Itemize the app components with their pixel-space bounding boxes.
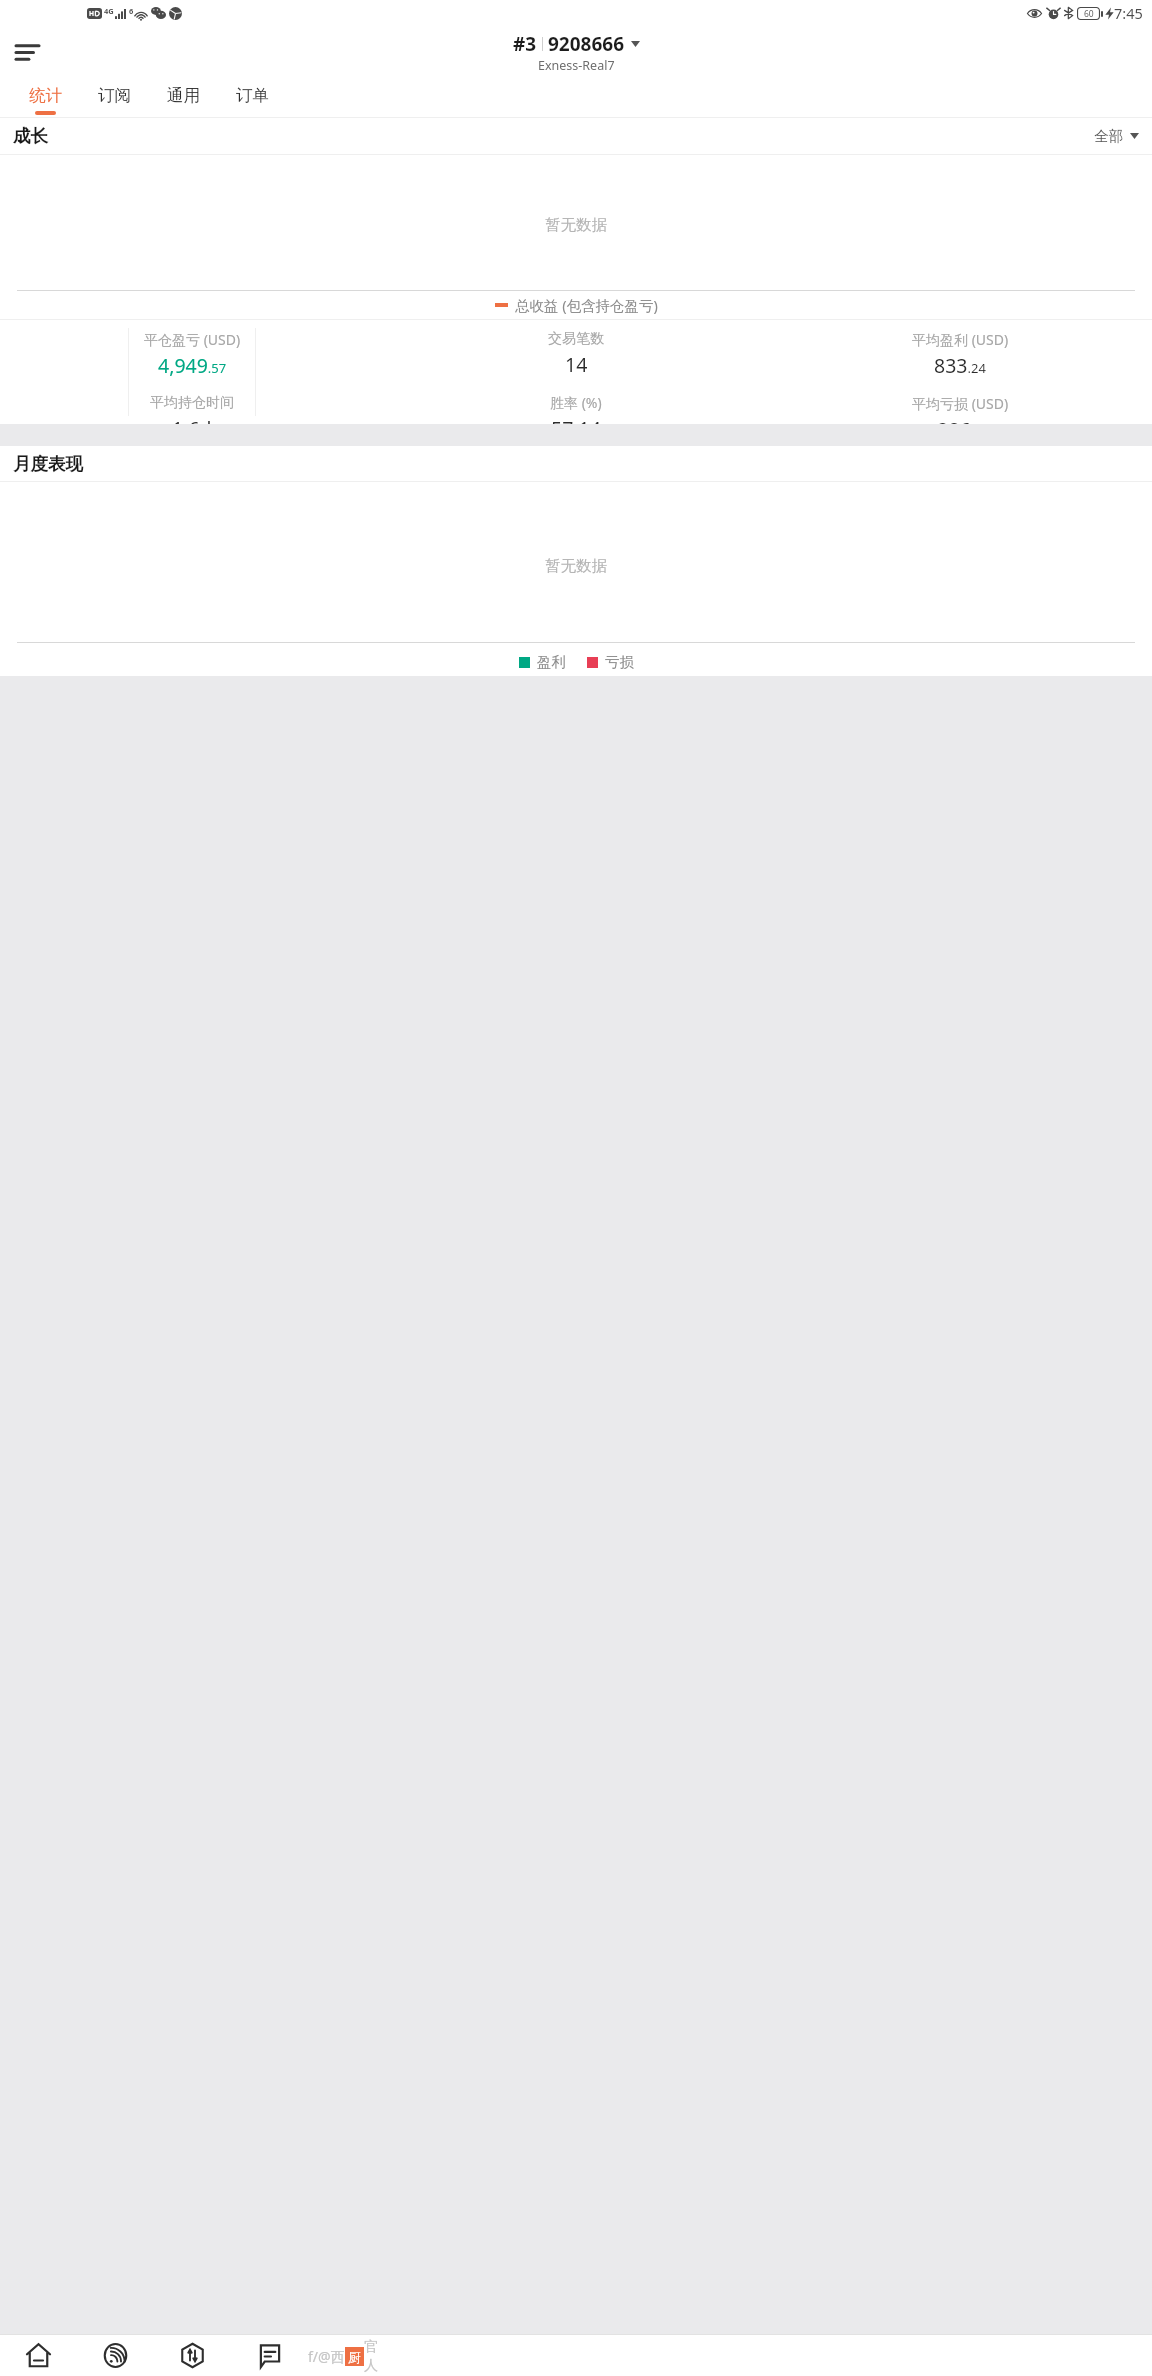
button[interactable]: #3 — [513, 31, 640, 74]
staticText: 官人 — [364, 2338, 385, 2374]
staticText: 订阅 — [98, 85, 131, 106]
staticText: Exness-Real7 — [538, 57, 615, 74]
staticText: 14 — [565, 351, 588, 378]
button[interactable]: 统计 — [11, 78, 80, 117]
staticText: f/@西 — [308, 2347, 345, 2366]
staticText: 暂无数据 — [545, 215, 607, 235]
staticText: 厨 — [348, 2349, 361, 2365]
button[interactable]: Signals — [77, 2335, 154, 2376]
staticText: 1.6d — [172, 415, 212, 424]
staticText: 交易笔数 — [548, 330, 604, 348]
staticText: 亏损 — [605, 653, 634, 671]
staticText: 57.14 — [551, 415, 601, 424]
staticText: 暂无数据 — [545, 556, 607, 576]
staticText: 833.24 — [934, 352, 986, 379]
button[interactable]: 全部 — [1094, 127, 1139, 145]
staticText: 通用 — [167, 85, 200, 106]
staticText: 成长 — [13, 125, 48, 147]
staticText: 平均持仓时间 — [150, 394, 234, 412]
button[interactable]: Trade — [154, 2335, 231, 2376]
staticText: 平均盈利 (USD) — [912, 330, 1009, 349]
staticText: 胜率 (%) — [550, 393, 602, 412]
button[interactable]: 订阅 — [80, 78, 149, 117]
staticText: 平仓盈亏 (USD) — [144, 330, 241, 349]
staticText: 总收益 (包含持仓盈亏) — [515, 295, 658, 315]
staticText: 全部 — [1094, 127, 1123, 145]
button[interactable]: Menu — [2, 27, 52, 77]
button[interactable]: 通用 — [149, 78, 218, 117]
staticText: 平均亏损 (USD) — [912, 394, 1009, 413]
staticText: #3 — [513, 31, 537, 57]
button[interactable]: 订单 — [218, 78, 287, 117]
button[interactable]: Messages — [231, 2335, 308, 2376]
staticText: 订单 — [236, 85, 269, 106]
button[interactable]: Profile — [308, 2335, 385, 2376]
staticText: 盈利 — [537, 653, 566, 671]
staticText: 统计 — [29, 85, 62, 106]
button[interactable]: Home — [0, 2335, 77, 2376]
staticText: 月度表现 — [13, 453, 83, 475]
staticText: 4,949.57 — [158, 352, 227, 379]
staticText: 60 — [1084, 8, 1094, 20]
staticText: -286.06 — [931, 416, 990, 424]
staticText: 7:45 — [1114, 3, 1143, 23]
staticText: 9208666 — [548, 31, 625, 57]
staticText: 4G — [104, 6, 114, 16]
staticText: 6 — [129, 6, 134, 16]
